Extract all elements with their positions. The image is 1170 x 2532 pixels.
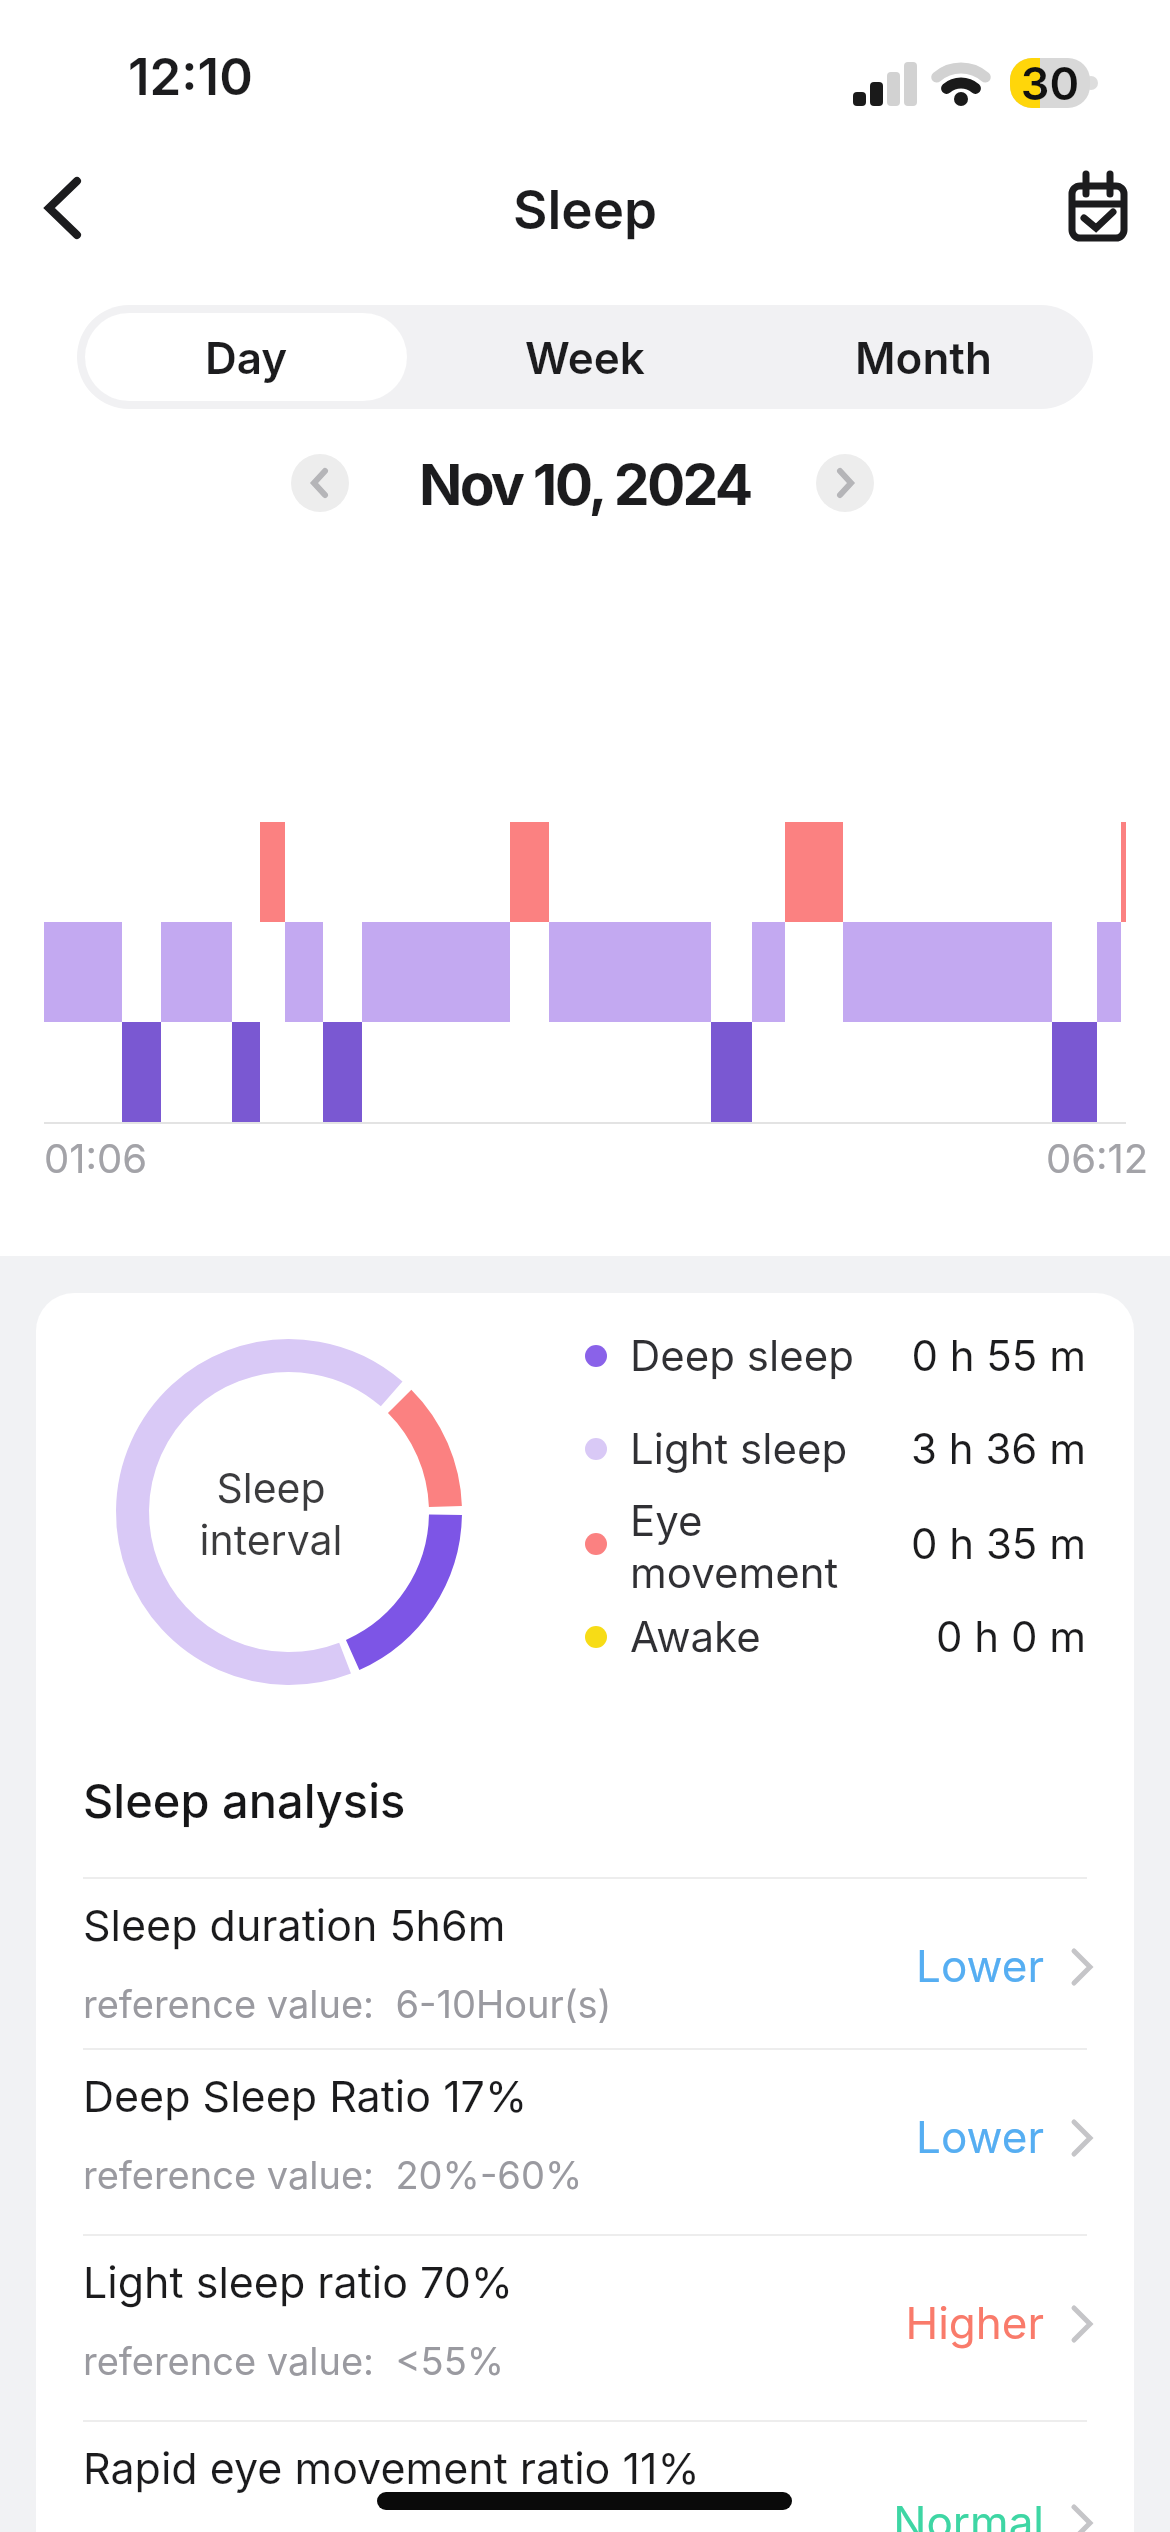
staticText: reference value: <55% (83, 2338, 505, 2384)
button[interactable]: Month (754, 305, 1093, 409)
staticText: Week (525, 331, 645, 384)
staticText: Day (205, 331, 288, 384)
button[interactable]: Deep Sleep Ratio 17% (36, 2048, 1134, 2234)
staticText: Sleep duration 5h6m (83, 1899, 506, 1951)
button[interactable]: Light sleep ratio 70% (36, 2234, 1134, 2420)
staticText: Sleep analysis (83, 1772, 406, 1829)
staticText: 01:06 (44, 1134, 148, 1182)
button[interactable]: Day (85, 313, 407, 401)
staticText: 12:10 (128, 46, 253, 108)
staticText: reference value: 20%-60% (83, 2152, 583, 2198)
staticText: 0 h 35 m (836, 1518, 1086, 1569)
staticText: 0 h 55 m (836, 1330, 1086, 1381)
staticText: 3 h 36 m (836, 1423, 1086, 1474)
button[interactable]: Week (415, 305, 754, 409)
staticText: Month (855, 331, 992, 384)
staticText: Deep sleep (630, 1330, 854, 1381)
staticText: reference value: 6-10Hour(s) (83, 1981, 612, 2027)
button[interactable] (30, 168, 110, 248)
staticText: Normal (36, 2495, 1044, 2532)
staticText: Eye movement (630, 1495, 839, 1598)
staticText: Rapid eye movement ratio 11% (83, 2442, 700, 2494)
button[interactable]: Sleep duration 5h6m (36, 1877, 1134, 2063)
staticText: Sleep interval (98, 1463, 444, 1565)
staticText: Sleep (513, 178, 658, 242)
staticText: Deep Sleep Ratio 17% (83, 2070, 528, 2122)
staticText: Light sleep (630, 1423, 848, 1474)
staticText: Higher (36, 2296, 1044, 2349)
staticText: 0 h 0 m (836, 1611, 1086, 1662)
staticText: 06:12 (1046, 1134, 1149, 1182)
staticText: Lower (36, 1939, 1044, 1992)
button[interactable] (1056, 168, 1140, 248)
staticText: Light sleep ratio 70% (83, 2256, 514, 2308)
staticText: 30 (1010, 56, 1090, 110)
staticText: Awake (630, 1611, 761, 1662)
button[interactable] (816, 454, 874, 512)
staticText: Nov 10, 2024 (419, 450, 751, 519)
button[interactable] (291, 454, 349, 512)
staticText: Lower (36, 2110, 1044, 2163)
button[interactable]: Rapid eye movement ratio 11% (36, 2420, 1134, 2532)
